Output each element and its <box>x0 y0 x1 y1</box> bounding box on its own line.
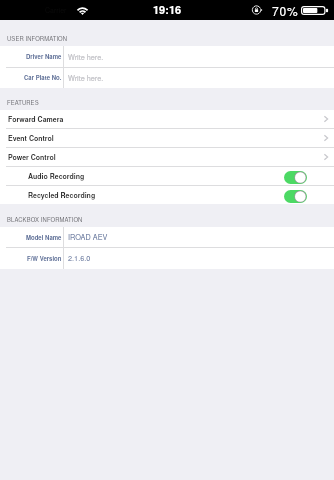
staticText: Driver Name <box>26 52 62 61</box>
button[interactable]: Power Control <box>0 147 334 166</box>
button[interactable]: Audio Recording <box>0 166 334 185</box>
staticText: Event Control <box>8 133 54 143</box>
button[interactable]: F/W Version <box>0 247 334 269</box>
staticText: Write here. <box>68 52 104 62</box>
staticText: 70% <box>272 2 299 19</box>
staticText: Car Plate No. <box>24 73 62 82</box>
button[interactable]: Event Control <box>0 128 334 147</box>
staticText: USER INFORMATION <box>7 34 68 42</box>
staticText: FEATURES <box>7 98 39 106</box>
button[interactable]: Model Name <box>0 227 334 247</box>
staticText: IROAD AEV <box>68 232 108 242</box>
staticText: 19:16 <box>153 2 182 18</box>
button[interactable]: Car Plate No. <box>0 67 334 88</box>
staticText: Recycled Recording <box>28 190 96 200</box>
staticText: BLACKBOX INFORMATION <box>7 215 83 223</box>
button[interactable]: Recycled Recording <box>0 185 334 204</box>
button[interactable]: Toggle Recycled Recording <box>284 190 307 203</box>
button[interactable]: Forward Camera <box>0 110 334 128</box>
button[interactable]: Toggle Audio Recording <box>284 171 307 184</box>
other: Battery 70 percent <box>301 6 329 15</box>
staticText: Write here. <box>68 73 104 83</box>
button[interactable]: Driver Name <box>0 46 334 67</box>
other: Wi-Fi <box>76 6 89 15</box>
staticText: Forward Camera <box>8 114 64 124</box>
staticText: Audio Recording <box>28 171 85 181</box>
staticText: 2.1.6.0 <box>68 253 91 263</box>
staticText: F/W Version <box>27 254 62 263</box>
staticText: Model Name <box>26 233 62 242</box>
staticText: Power Control <box>8 152 56 162</box>
other: Rotation lock <box>251 4 262 16</box>
